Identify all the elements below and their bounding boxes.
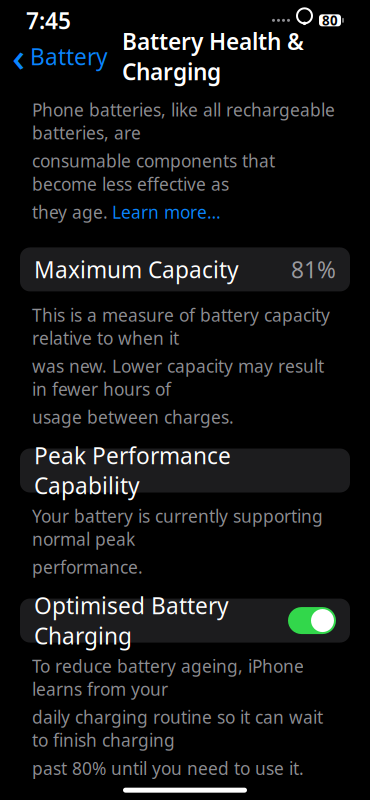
staticText: 80 (322, 11, 338, 29)
staticText: To reduce battery ageing, iPhone learns … (32, 655, 304, 701)
staticText: 7:45 (26, 5, 71, 35)
staticText: Learn more… (112, 200, 221, 223)
staticText: performance. (32, 556, 143, 579)
staticText: Optimised Battery Charging (34, 590, 229, 651)
staticText: usage between charges. (32, 405, 234, 428)
staticText: was new. Lower capacity may result in fe… (32, 354, 324, 400)
button[interactable]: Peak Performance Capability (0, 448, 370, 492)
staticText: Your battery is currently supporting nor… (32, 504, 323, 550)
button[interactable]: ‹ (0, 34, 114, 78)
staticText: ‹ (12, 30, 25, 83)
staticText: Maximum Capacity (34, 254, 239, 284)
staticText: consumable components that become less e… (32, 149, 275, 195)
staticText: Battery Health & Charging (122, 26, 304, 86)
staticText: This is a measure of battery capacity re… (32, 303, 330, 349)
staticText: they age. (32, 200, 108, 223)
staticText: Phone batteries, like all rechargeable b… (32, 98, 335, 144)
staticText: 81% (291, 254, 336, 284)
button[interactable]: Optimised Battery Charging (0, 599, 370, 643)
staticText: daily charging routine so it can wait to… (32, 706, 323, 752)
staticText: Battery (30, 41, 108, 71)
staticText: past 80% until you need to use it. (32, 757, 304, 780)
staticText: Peak Performance Capability (34, 440, 231, 501)
